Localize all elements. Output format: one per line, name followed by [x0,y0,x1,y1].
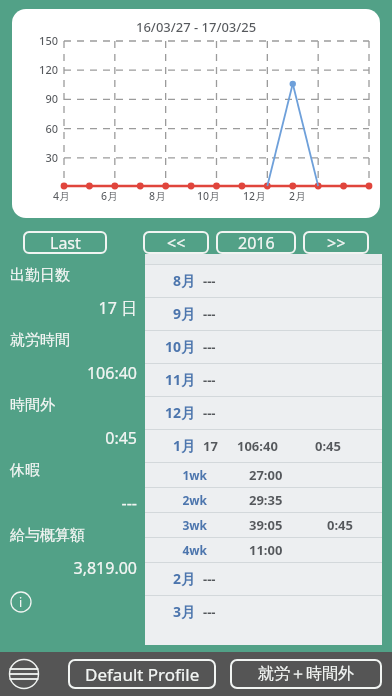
button[interactable]: 11月 [145,363,382,396]
staticText: 106:40 [237,437,315,455]
staticText: 0:45 [315,437,382,455]
staticText: 出勤日数 [10,266,137,285]
staticText: Last [50,232,81,254]
staticText: --- [203,570,237,588]
staticText: 17 [203,437,237,455]
staticText: 30 [18,150,58,165]
staticText: 150 [18,33,58,48]
staticText: 4月 [53,189,70,203]
staticText: 29:35 [249,491,327,509]
staticText: 10月 [145,337,195,356]
button[interactable]: Last [23,231,107,254]
button[interactable]: 12月 [145,396,382,429]
staticText: --- [10,492,137,514]
button[interactable]: Menu [8,658,40,690]
staticText: 106:40 [10,362,137,384]
button[interactable]: 4wk [145,537,382,562]
staticText: --- [203,603,237,621]
button[interactable]: 9月 [145,297,382,330]
staticText: 4wk [145,542,207,558]
staticText: 11月 [145,370,195,389]
button[interactable]: 2月 [145,562,382,595]
staticText: --- [203,338,237,356]
staticText: 120 [18,62,58,77]
button[interactable]: 2wk [145,487,382,512]
staticText: 1wk [145,467,207,483]
staticText: 12月 [145,403,195,422]
staticText: Default Profile [85,663,200,686]
button[interactable]: 1月 [145,429,382,462]
staticText: --- [203,404,237,422]
staticText: 60 [18,121,58,136]
button[interactable]: 3月 [145,595,382,628]
button[interactable]: >> [303,231,369,254]
button[interactable]: 2016 [216,231,296,254]
button[interactable]: 10月 [145,330,382,363]
staticText: 1月 [145,436,195,455]
staticText: 就労時間 [10,331,137,350]
button[interactable]: Info [10,591,32,613]
staticText: 8月 [149,189,166,203]
staticText: 9月 [145,304,195,323]
staticText: 27:00 [249,466,327,484]
staticText: 6月 [101,189,118,203]
staticText: 3wk [145,517,207,533]
staticText: 3月 [145,602,195,621]
staticText: 2016 [238,232,275,254]
staticText: 39:05 [249,516,327,534]
staticText: 8月 [145,271,195,290]
staticText: 11:00 [249,541,327,559]
button[interactable]: 1wk [145,462,382,487]
staticText: 時間外 [10,396,137,415]
button[interactable]: << [143,231,209,254]
staticText: 休暇 [10,461,137,480]
staticText: 2wk [145,492,207,508]
staticText: 0:45 [327,516,382,534]
staticText: 17 日 [10,297,137,319]
staticText: >> [327,232,346,254]
staticText: i [19,594,23,610]
staticText: 12月 [243,189,266,203]
button[interactable]: 就労＋時間外 [230,659,382,689]
staticText: 就労＋時間外 [258,664,354,684]
staticText: 2月 [145,569,195,588]
staticText: 2月 [289,189,306,203]
staticText: 90 [18,91,58,106]
staticText: --- [203,371,237,389]
staticText: << [167,232,186,254]
staticText: 10月 [197,189,220,203]
staticText: 0:45 [10,427,137,449]
staticText: 3,819.00 [10,557,137,579]
staticText: --- [203,272,237,290]
staticText: --- [203,305,237,323]
staticText: 16/03/27 - 17/03/25 [136,18,257,36]
button[interactable]: Default Profile [68,659,216,689]
button[interactable]: 8月 [145,264,382,297]
button[interactable]: 3wk [145,512,382,537]
staticText: 給与概算額 [10,526,137,545]
